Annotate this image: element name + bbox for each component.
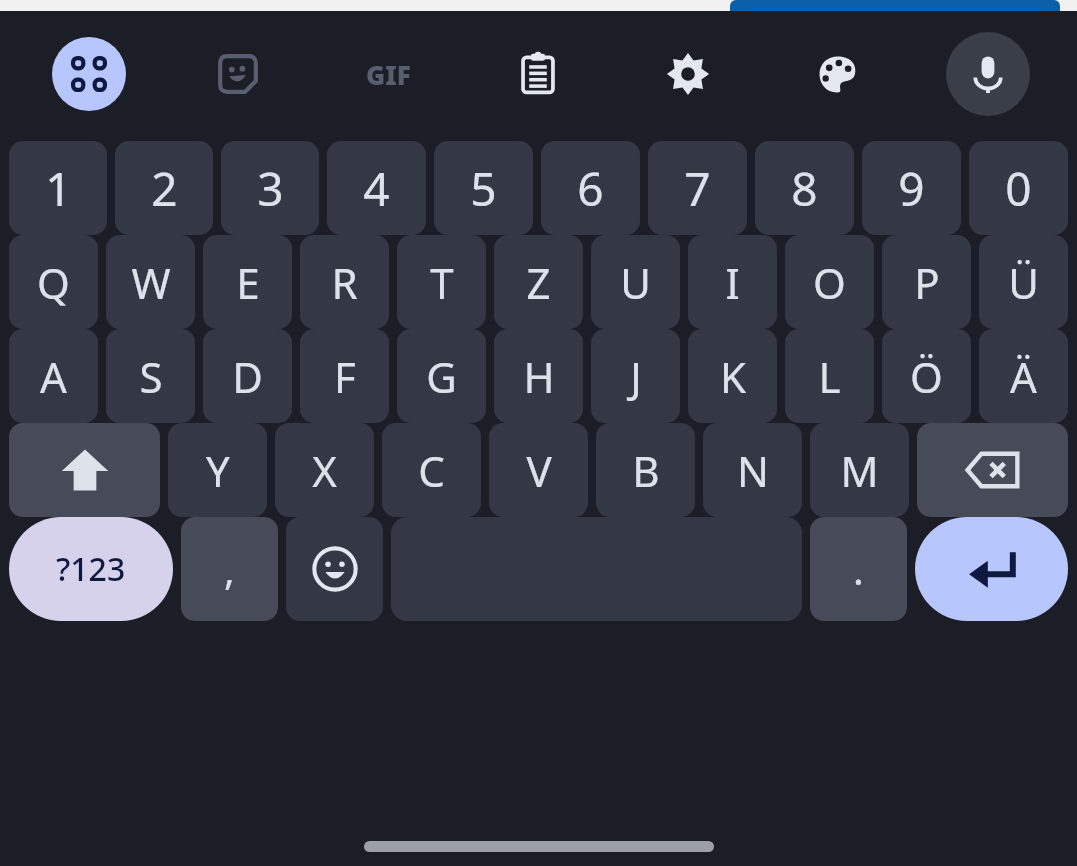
staticText: 7 <box>684 157 711 220</box>
staticText: I <box>725 254 740 311</box>
staticText: Ö <box>910 348 943 405</box>
button[interactable]: 1 <box>9 141 107 235</box>
button[interactable]: U <box>591 235 680 329</box>
button[interactable]: A <box>9 329 98 423</box>
button[interactable]: Shift <box>9 423 160 517</box>
button[interactable]: Settings <box>613 11 763 137</box>
staticText: W <box>131 254 171 311</box>
staticText: 0 <box>1005 157 1032 220</box>
button[interactable]: G <box>397 329 486 423</box>
button[interactable]: Stickers <box>163 11 313 137</box>
staticText: 6 <box>577 157 604 220</box>
button[interactable]: . <box>810 517 907 621</box>
staticText: Ü <box>1008 254 1039 311</box>
button[interactable]: Q <box>9 235 98 329</box>
button[interactable]: Emoji <box>286 517 383 621</box>
button[interactable]: , <box>181 517 278 621</box>
staticText: . <box>853 542 864 596</box>
staticText: O <box>813 254 846 311</box>
staticText: X <box>312 442 337 499</box>
staticText: 1 <box>45 157 72 220</box>
button[interactable]: C <box>382 423 481 517</box>
staticText: , <box>224 542 235 596</box>
button[interactable]: L <box>785 329 874 423</box>
staticText: 2 <box>151 157 178 220</box>
staticText: 3 <box>257 157 284 220</box>
button[interactable]: E <box>203 235 292 329</box>
staticText: 5 <box>470 157 497 220</box>
staticText: P <box>914 254 940 311</box>
button[interactable]: GIF <box>313 11 463 137</box>
staticText: C <box>418 442 445 499</box>
button[interactable]: V <box>489 423 588 517</box>
button[interactable]: R <box>300 235 389 329</box>
button[interactable]: ?123 <box>9 517 173 621</box>
staticText: ?123 <box>56 547 126 591</box>
staticText: R <box>331 254 358 311</box>
button[interactable]: 9 <box>862 141 961 235</box>
staticText: Z <box>526 254 551 311</box>
button[interactable]: K <box>688 329 777 423</box>
button[interactable]: 8 <box>755 141 854 235</box>
staticText: F <box>334 348 356 405</box>
staticText: U <box>620 254 651 311</box>
button[interactable]: D <box>203 329 292 423</box>
button[interactable]: S <box>106 329 195 423</box>
button[interactable]: F <box>300 329 389 423</box>
button[interactable]: Ö <box>882 329 971 423</box>
button[interactable]: M <box>810 423 909 517</box>
button[interactable]: N <box>703 423 802 517</box>
button[interactable]: P <box>882 235 971 329</box>
button[interactable]: Backspace <box>917 423 1068 517</box>
staticText: T <box>430 254 454 311</box>
button[interactable]: Voice input <box>913 11 1063 137</box>
button[interactable]: H <box>494 329 583 423</box>
button[interactable]: Enter <box>915 517 1068 621</box>
staticText: 9 <box>898 157 925 220</box>
button[interactable]: Clipboard <box>463 11 613 137</box>
button[interactable]: Y <box>168 423 267 517</box>
staticText: Y <box>206 442 230 499</box>
button[interactable]: O <box>785 235 874 329</box>
button[interactable]: 5 <box>434 141 533 235</box>
staticText: M <box>840 442 879 499</box>
staticText: 8 <box>791 157 818 220</box>
button[interactable]: T <box>397 235 486 329</box>
staticText: E <box>236 254 260 311</box>
button[interactable]: W <box>106 235 195 329</box>
staticText: B <box>632 442 660 499</box>
button[interactable]: X <box>275 423 374 517</box>
button[interactable]: 7 <box>648 141 747 235</box>
button[interactable]: 4 <box>327 141 426 235</box>
staticText: V <box>526 442 552 499</box>
staticText: N <box>737 442 769 499</box>
button[interactable]: 6 <box>541 141 640 235</box>
staticText: A <box>40 348 67 405</box>
button[interactable]: Ä <box>979 329 1068 423</box>
staticText: D <box>232 348 263 405</box>
staticText: GIF <box>366 57 411 92</box>
staticText: K <box>720 348 746 405</box>
staticText: S <box>139 348 163 405</box>
staticText: H <box>523 348 555 405</box>
button[interactable]: B <box>596 423 695 517</box>
button[interactable]: 0 <box>969 141 1068 235</box>
staticText: 4 <box>363 157 390 220</box>
staticText: Q <box>37 254 70 311</box>
button[interactable]: I <box>688 235 777 329</box>
button[interactable]: J <box>591 329 680 423</box>
staticText: J <box>630 348 642 405</box>
staticText: G <box>426 348 457 405</box>
button[interactable]: Z <box>494 235 583 329</box>
button[interactable]: Ü <box>979 235 1068 329</box>
button[interactable]: 2 <box>115 141 213 235</box>
button[interactable]: Open keyboard apps <box>14 11 163 137</box>
staticText: L <box>818 348 841 405</box>
button[interactable]: Themes <box>763 11 913 137</box>
staticText: Ä <box>1010 348 1037 405</box>
button[interactable]: 3 <box>221 141 319 235</box>
